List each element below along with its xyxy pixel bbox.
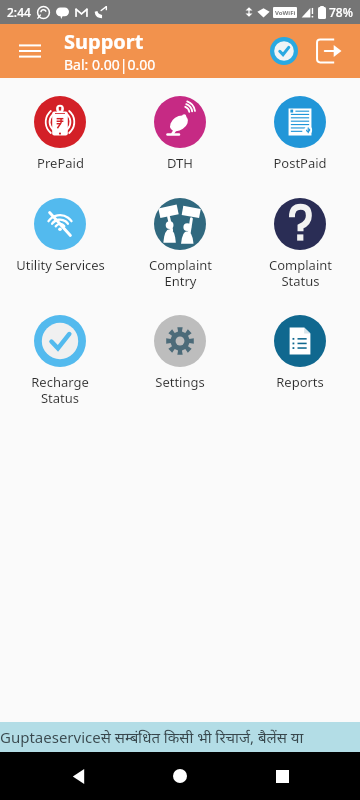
button[interactable]: DTH — [120, 88, 240, 178]
button[interactable]: Complaint Status — [240, 190, 360, 295]
staticText: DTH — [167, 154, 193, 172]
staticText: VoWiFi — [275, 9, 296, 17]
staticText: Complaint Entry — [149, 256, 212, 289]
staticText: Support — [64, 28, 144, 55]
button[interactable]: PostPaid — [240, 88, 360, 178]
staticText: Recharge Status — [31, 373, 89, 406]
button[interactable]: Home — [156, 752, 204, 800]
button[interactable]: Recharge Status — [0, 307, 120, 412]
staticText: Guptaeserviceसे सम्बंधित किसी भी रिचार्ज… — [0, 727, 304, 747]
button[interactable]: PrePaid — [0, 88, 120, 178]
staticText: PrePaid — [37, 154, 84, 172]
button[interactable]: Recent apps — [258, 752, 306, 800]
button[interactable]: Utility Services — [0, 190, 120, 280]
staticText: 2:44 — [7, 4, 31, 20]
staticText: Complaint Status — [269, 256, 332, 289]
staticText: Bal: 0.00|0.00 — [64, 55, 156, 74]
staticText: 78% — [329, 4, 353, 20]
staticText: Reports — [276, 373, 324, 391]
button[interactable]: Back — [54, 752, 102, 800]
button[interactable]: Complaint Entry — [120, 190, 240, 295]
button[interactable]: Open navigation menu — [14, 35, 46, 67]
button[interactable]: Reports — [240, 307, 360, 397]
button[interactable]: Settings — [120, 307, 240, 397]
button[interactable]: Logout — [310, 32, 348, 70]
staticText: PostPaid — [273, 154, 327, 172]
button[interactable]: Verified status — [266, 33, 302, 69]
staticText: Utility Services — [16, 256, 105, 274]
staticText: Settings — [155, 373, 205, 391]
